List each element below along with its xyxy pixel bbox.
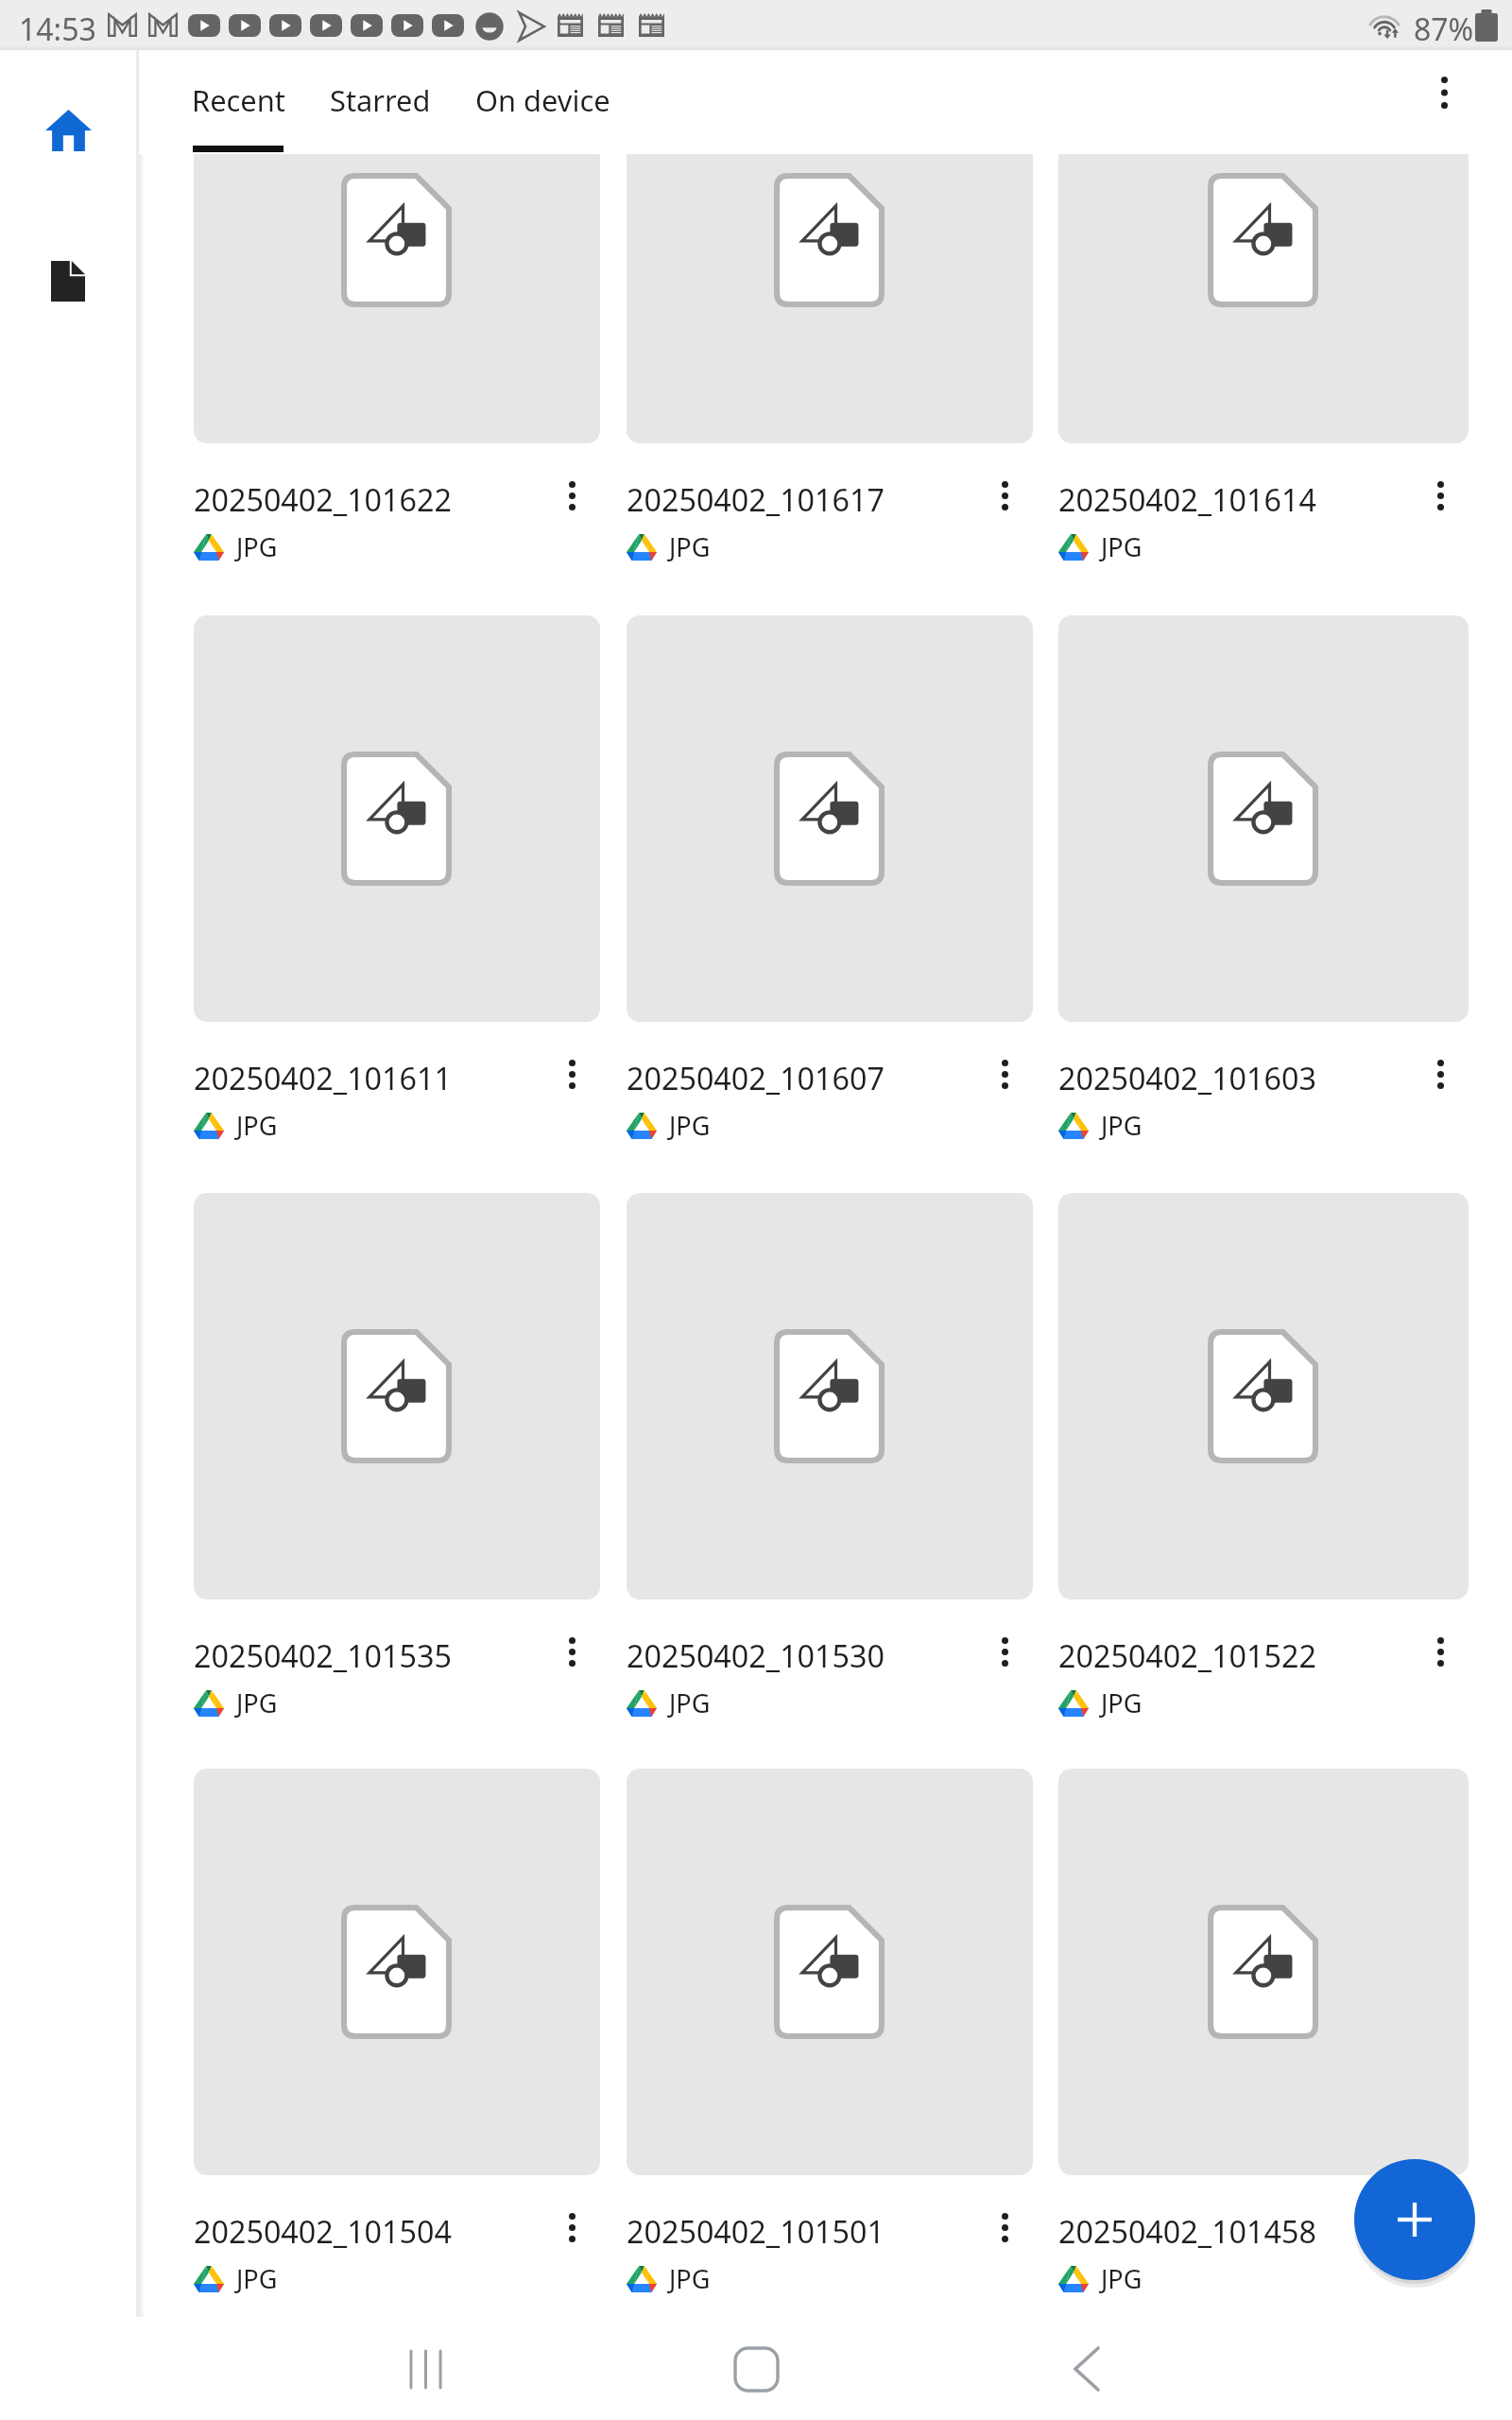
button[interactable]: 20250402_101617 <box>627 154 1033 732</box>
button[interactable]: Recent <box>193 50 283 154</box>
button[interactable]: Starred <box>334 50 427 154</box>
button[interactable]: File options <box>543 2199 600 2256</box>
staticText: 20250402_101614 <box>1058 478 1402 520</box>
staticText: JPG <box>1101 529 1143 564</box>
staticText: JPG <box>236 1685 278 1720</box>
staticText: JPG <box>1101 2261 1143 2296</box>
staticText: 20250402_101530 <box>627 1634 967 1676</box>
button[interactable]: More options <box>1414 62 1474 123</box>
button[interactable]: File options <box>1412 2199 1469 2256</box>
staticText: 20250402_101611 <box>194 1057 534 1098</box>
staticText: JPG <box>236 2261 278 2296</box>
button[interactable]: Files <box>25 237 112 324</box>
button[interactable]: File options <box>543 1046 600 1102</box>
staticText: Starred <box>330 80 431 120</box>
button[interactable]: File options <box>976 1623 1033 1680</box>
staticText: 14:53 <box>19 9 96 50</box>
staticText: JPG <box>669 2261 711 2296</box>
button[interactable]: Create new <box>1354 2159 1475 2280</box>
staticText: 20250402_101504 <box>194 2210 534 2252</box>
button[interactable]: File options <box>1412 1623 1469 1680</box>
staticText: 20250402_101607 <box>627 1057 967 1098</box>
button[interactable]: File options <box>1412 1046 1469 1102</box>
button[interactable]: Home <box>25 87 112 174</box>
staticText: Recent <box>192 80 285 120</box>
button[interactable]: File options <box>543 467 600 524</box>
button[interactable]: File options <box>1412 467 1469 524</box>
staticText: 20250402_101617 <box>627 478 967 520</box>
button[interactable]: 20250402_101458 <box>1058 1769 1469 2346</box>
staticText: 87% <box>1414 9 1474 50</box>
staticText: JPG <box>1101 1685 1143 1720</box>
staticText: JPG <box>236 1108 278 1143</box>
staticText: 20250402_101535 <box>194 1634 534 1676</box>
staticText: 20250402_101501 <box>627 2210 967 2252</box>
button[interactable]: 20250402_101611 <box>194 615 600 1193</box>
button[interactable]: 20250402_101622 <box>194 154 600 732</box>
button[interactable]: 20250402_101607 <box>627 615 1033 1193</box>
staticText: On device <box>475 80 610 120</box>
button[interactable]: File options <box>976 1046 1033 1102</box>
staticText: 20250402_101458 <box>1058 2210 1402 2252</box>
button[interactable]: 20250402_101501 <box>627 1769 1033 2346</box>
button[interactable]: File options <box>976 467 1033 524</box>
button[interactable]: 20250402_101603 <box>1058 615 1469 1193</box>
button[interactable]: 20250402_101535 <box>194 1193 600 1771</box>
button[interactable]: 20250402_101614 <box>1058 154 1469 732</box>
button[interactable]: 20250402_101504 <box>194 1769 600 2346</box>
button[interactable]: On device <box>477 50 609 154</box>
button[interactable]: Recents <box>378 2322 472 2416</box>
button[interactable]: 20250402_101522 <box>1058 1193 1469 1771</box>
button[interactable]: File options <box>976 2199 1033 2256</box>
staticText: JPG <box>669 1108 711 1143</box>
button[interactable]: 20250402_101530 <box>627 1193 1033 1771</box>
button[interactable]: Home <box>709 2322 803 2416</box>
button[interactable]: Back <box>1039 2322 1134 2416</box>
staticText: JPG <box>1101 1108 1143 1143</box>
staticText: 20250402_101522 <box>1058 1634 1402 1676</box>
staticText: JPG <box>669 529 711 564</box>
staticText: JPG <box>669 1685 711 1720</box>
staticText: 20250402_101622 <box>194 478 534 520</box>
staticText: 20250402_101603 <box>1058 1057 1402 1098</box>
staticText: JPG <box>236 529 278 564</box>
button[interactable]: File options <box>543 1623 600 1680</box>
